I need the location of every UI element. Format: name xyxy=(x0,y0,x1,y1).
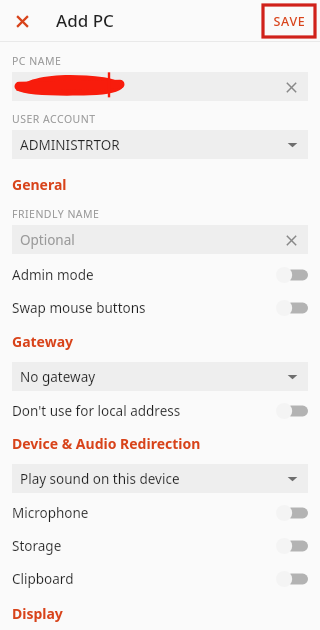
staticText: Display xyxy=(12,604,63,623)
button[interactable]: ADMINISTRTOR xyxy=(12,130,308,159)
staticText: USER ACCOUNT xyxy=(12,112,96,126)
staticText: Storage xyxy=(12,537,62,555)
staticText: Device & Audio Redirection xyxy=(12,434,201,453)
button[interactable]: SAVE xyxy=(263,5,315,37)
button[interactable]: Close xyxy=(8,7,36,35)
button[interactable]: Play sound on this device xyxy=(12,464,308,493)
staticText: Don't use for local address xyxy=(12,402,181,420)
button[interactable]: Clipboard xyxy=(0,562,320,595)
button[interactable]: Storage xyxy=(0,529,320,562)
staticText: No gateway xyxy=(20,368,96,386)
staticText: General xyxy=(12,175,67,194)
staticText: SAVE xyxy=(273,13,306,30)
staticText: Gateway xyxy=(12,332,74,351)
staticText: Play sound on this device xyxy=(20,470,180,488)
button[interactable]: Microphone xyxy=(0,496,320,529)
staticText: Admin mode xyxy=(12,266,94,284)
staticText: Clipboard xyxy=(12,570,74,588)
button[interactable]: Swap mouse buttons xyxy=(0,291,320,324)
staticText: Microphone xyxy=(12,504,89,522)
button[interactable]: Clear text xyxy=(280,229,302,251)
button[interactable]: No gateway xyxy=(12,362,308,391)
staticText: Optional xyxy=(20,231,75,249)
button[interactable]: Don't use for local address xyxy=(0,394,320,427)
staticText: PC NAME xyxy=(12,54,62,68)
staticText: Add PC xyxy=(56,9,114,32)
staticText: Swap mouse buttons xyxy=(12,299,146,317)
button[interactable]: Admin mode xyxy=(0,258,320,291)
staticText: FRIENDLY NAME xyxy=(12,207,100,221)
button[interactable]: Clear text xyxy=(12,72,308,101)
button[interactable]: Optional xyxy=(12,225,308,254)
staticText: ADMINISTRTOR xyxy=(20,136,120,154)
button[interactable]: Clear text xyxy=(280,76,302,98)
